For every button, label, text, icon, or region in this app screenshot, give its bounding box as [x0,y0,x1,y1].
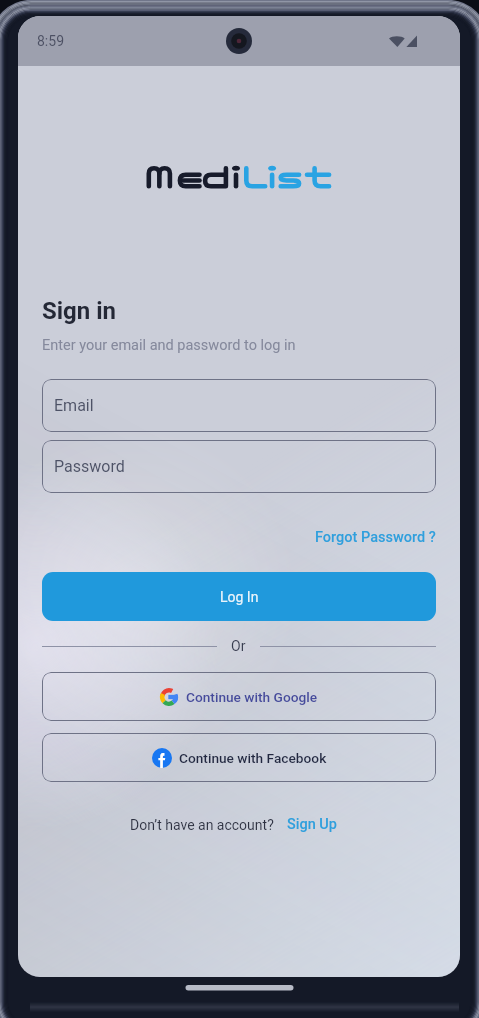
staticText: Password [54,457,125,476]
staticText: Sign Up [287,816,337,833]
button[interactable]: Password [42,440,436,493]
button[interactable]: Continue with Facebook [42,733,436,782]
button[interactable]: Forgot Password ? [315,529,436,546]
staticText: Email [54,396,94,415]
staticText: Sign in [42,297,117,325]
staticText: Don’t have an account? [130,817,274,833]
staticText: Continue with Facebook [179,750,327,766]
staticText: Enter your email and password to log in [42,337,296,354]
button[interactable]: Email [42,379,436,432]
staticText: Log In [220,589,259,605]
button[interactable]: Sign Up [287,816,337,833]
staticText: Forgot Password ? [315,529,436,546]
staticText: Or [231,638,246,654]
staticText: Continue with Google [186,689,318,705]
staticText: 8:59 [37,33,64,49]
button[interactable]: Continue with Google [42,672,436,721]
button[interactable]: Log In [42,572,436,621]
